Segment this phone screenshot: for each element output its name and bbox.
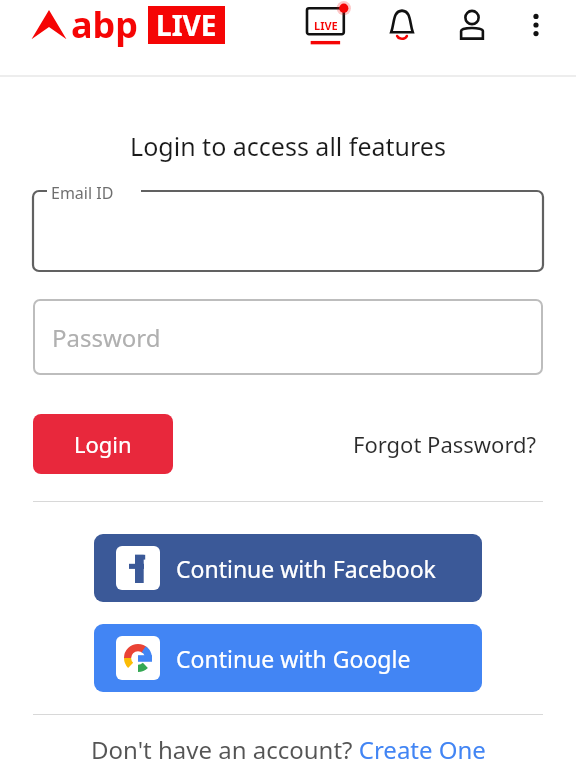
button[interactable]: Notifications [380,3,424,47]
staticText: abp [71,0,139,49]
staticText: Login [74,429,132,459]
button[interactable]: Continue with Facebook [94,534,482,602]
button[interactable]: Live TV [306,3,354,47]
button[interactable]: Login [33,414,173,474]
button[interactable]: Password [33,299,543,375]
staticText: LIVE [314,18,338,33]
staticText: Continue with Facebook [176,553,436,584]
staticText: Login to access all features [0,129,576,163]
button[interactable]: Don't have an account? Create One [0,733,576,766]
staticText: LIVE [156,6,217,44]
button[interactable]: More options [516,5,556,45]
staticText: Don't have an account? Create One [91,733,486,766]
button[interactable]: Forgot Password? [347,423,543,465]
button[interactable]: Continue with Google [94,624,482,692]
button[interactable]: Profile [450,3,494,47]
staticText: Forgot Password? [353,429,537,459]
staticText: Password [52,321,161,354]
staticText: Email ID [51,182,114,204]
staticText: Continue with Google [176,643,411,674]
button[interactable]: Email ID [33,191,543,271]
